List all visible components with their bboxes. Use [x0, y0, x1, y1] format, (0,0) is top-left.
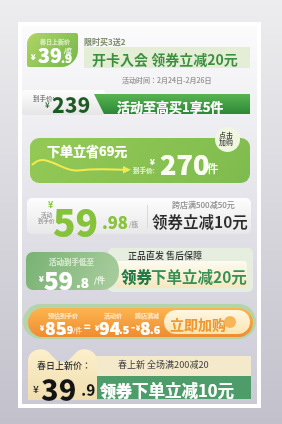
- button[interactable]: [116, 261, 247, 288]
- staticText: ¥: [136, 323, 141, 333]
- staticText: 加购: [219, 137, 233, 147]
- staticText: 立即加购: [170, 314, 226, 334]
- button[interactable]: 活动到手低至: [26, 252, 119, 290]
- staticText: 270: [160, 144, 210, 183]
- staticText: 活动至高买1享5件: [117, 97, 224, 116]
- staticText: 到手价: [38, 217, 55, 225]
- button[interactable]: 活动至高买1享5件: [94, 94, 250, 114]
- staticText: /度: [64, 47, 72, 55]
- staticText: /瓶: [129, 219, 139, 228]
- staticText: 正品直发 售后保障: [128, 249, 203, 262]
- button[interactable]: 点击加购: [215, 127, 240, 152]
- staticText: .9: [61, 50, 73, 67]
- button[interactable]: [22, 90, 105, 115]
- staticText: 下单立省69元: [47, 141, 128, 160]
- staticText: 跨店满500减50元: [172, 199, 235, 211]
- staticText: 94: [99, 315, 121, 337]
- staticText: ¥: [95, 323, 100, 333]
- staticText: 开卡入会 领券立减20元: [92, 49, 238, 69]
- staticText: ¥: [40, 323, 45, 333]
- button[interactable]: 领券: [96, 376, 251, 399]
- staticText: 下单立减20元: [151, 265, 247, 287]
- staticText: 到手价:: [133, 165, 155, 174]
- staticText: 下单立减10元: [132, 378, 234, 401]
- staticText: 活动: [41, 211, 53, 219]
- button[interactable]: 下单立省69元: [30, 138, 250, 183]
- staticText: 领券: [100, 378, 133, 401]
- staticText: 8: [140, 315, 151, 337]
- staticText: 85: [45, 315, 67, 337]
- staticText: .5: [119, 322, 130, 337]
- staticText: .8: [76, 272, 89, 290]
- staticText: 39: [41, 367, 77, 409]
- staticText: 活动时间：2月24日-2月26日: [122, 75, 212, 85]
- staticText: 活动价: [104, 311, 123, 320]
- staticText: /件: [94, 274, 106, 286]
- staticText: 59: [44, 262, 74, 290]
- staticText: /件: [203, 160, 219, 176]
- staticText: .9: [63, 322, 74, 337]
- staticText: 春上新 全场满200减20: [118, 358, 209, 371]
- button[interactable]: 春日上新价: [27, 33, 78, 67]
- staticText: ¥: [150, 156, 155, 168]
- staticText: 限时买3送2: [84, 36, 126, 48]
- staticText: 领券立减10元: [152, 210, 248, 232]
- staticText: 春日上新价：: [37, 359, 92, 372]
- staticText: .9: [81, 379, 96, 401]
- staticText: ¥: [48, 198, 54, 211]
- staticText: 跨店满减: [135, 311, 160, 320]
- staticText: 预估到手价: [48, 311, 79, 320]
- staticText: ¥: [33, 381, 39, 395]
- staticText: 春日上新价: [40, 37, 71, 46]
- staticText: =: [84, 318, 91, 334]
- button[interactable]: 春日上新价：: [28, 347, 97, 400]
- staticText: 到手价:: [33, 93, 55, 102]
- staticText: 239: [52, 89, 91, 119]
- button[interactable]: 立即加购: [164, 310, 250, 334]
- staticText: -: [131, 318, 136, 334]
- staticText: ¥: [31, 51, 36, 62]
- staticText: /件: [73, 325, 83, 334]
- staticText: 59: [53, 194, 99, 248]
- staticText: 点击: [219, 130, 233, 140]
- button[interactable]: [84, 47, 250, 68]
- staticText: .98: [102, 210, 128, 234]
- button[interactable]: 预估到手价: [28, 308, 253, 337]
- staticText: ¥: [45, 99, 50, 111]
- staticText: 活动到手低至: [49, 256, 94, 267]
- staticText: 领券: [121, 265, 153, 287]
- staticText: 39: [38, 40, 62, 67]
- staticText: .6: [150, 322, 161, 337]
- staticText: ¥: [39, 273, 44, 285]
- button[interactable]: [27, 198, 251, 234]
